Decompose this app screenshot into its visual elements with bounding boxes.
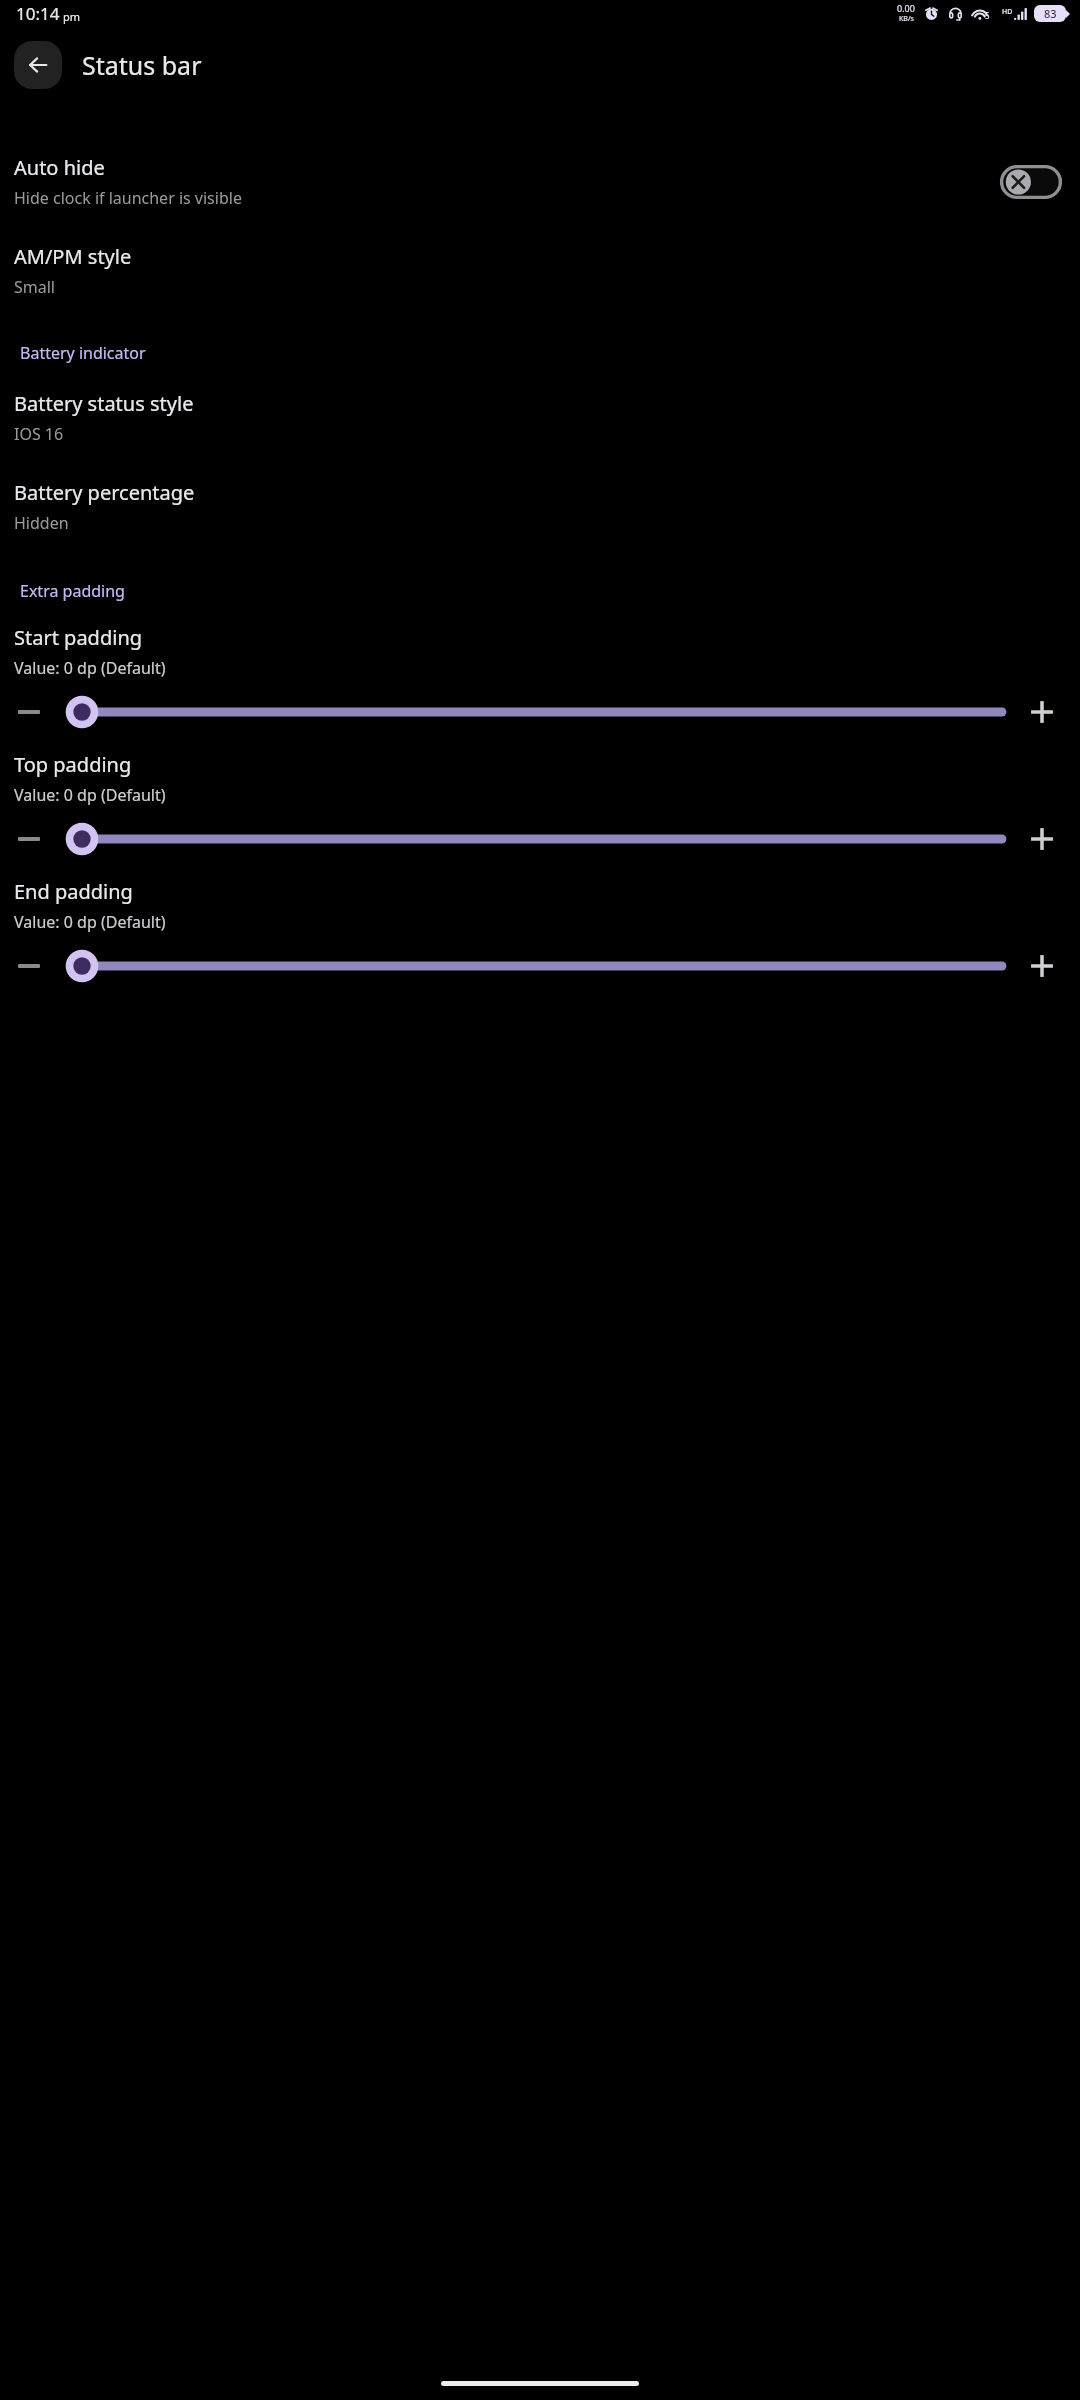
staticText: Hidden [14, 512, 69, 534]
staticText: Value: 0 dp (Default) [14, 657, 166, 679]
staticText: IOS 16 [14, 423, 64, 445]
staticText: Battery status style [14, 390, 194, 417]
button[interactable]: Increase Top padding [1004, 822, 1080, 856]
staticText: End padding [14, 878, 133, 905]
button[interactable]: End padding [0, 878, 1080, 933]
staticText: 10:14 [16, 2, 60, 25]
button[interactable]: Auto hide [0, 152, 1080, 211]
staticText: 5 [985, 10, 990, 21]
staticText: pm [63, 9, 81, 24]
staticText: Extra padding [20, 580, 125, 602]
button[interactable]: Decrease End padding [0, 949, 58, 983]
button[interactable]: Increase Start padding [1004, 695, 1080, 729]
staticText: Small [14, 276, 55, 298]
staticText: KB/s [899, 14, 914, 24]
button[interactable]: Decrease Start padding [0, 695, 58, 729]
staticText: Start padding [14, 624, 143, 651]
button[interactable]: Back [14, 41, 62, 89]
staticText: Top padding [14, 751, 132, 778]
button[interactable]: Decrease Top padding [0, 822, 58, 856]
button[interactable]: Battery status style [0, 388, 1080, 447]
button[interactable]: End padding slider [58, 949, 1004, 983]
staticText: Hide clock if launcher is visible [14, 187, 242, 209]
staticText: Battery percentage [14, 479, 195, 506]
staticText: Value: 0 dp (Default) [14, 784, 166, 806]
staticText: HD [1002, 7, 1013, 17]
staticText: Auto hide [14, 154, 105, 181]
staticText: AM/PM style [14, 243, 132, 270]
button[interactable]: Increase End padding [1004, 949, 1080, 983]
button[interactable]: Top padding slider [58, 822, 1004, 856]
button[interactable]: Start padding [0, 624, 1080, 679]
button[interactable]: Auto hide, off [1000, 165, 1062, 199]
staticText: Battery indicator [20, 342, 146, 364]
button[interactable]: Top padding [0, 751, 1080, 806]
button[interactable]: Start padding slider [58, 695, 1004, 729]
staticText: 83 [1044, 6, 1057, 21]
button[interactable]: Battery percentage [0, 477, 1080, 536]
staticText: 0.00 [897, 2, 915, 14]
button[interactable]: AM/PM style [0, 241, 1080, 300]
staticText: Value: 0 dp (Default) [14, 911, 166, 933]
staticText: Status bar [82, 48, 202, 82]
